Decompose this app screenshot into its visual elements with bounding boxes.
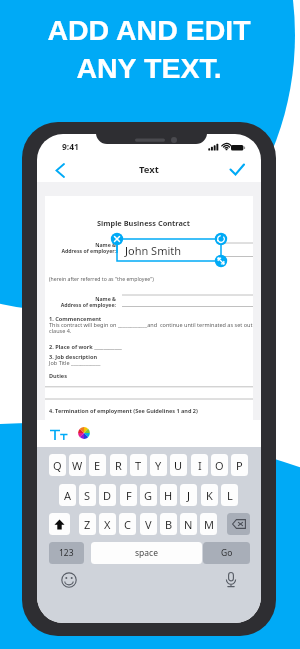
staticText: K [206, 488, 213, 503]
button[interactable]: Q [49, 454, 66, 476]
staticText: O [215, 458, 224, 473]
button[interactable]: Backspace [227, 513, 250, 535]
button[interactable]: Y [150, 454, 167, 476]
button[interactable]: F [120, 484, 137, 506]
staticText: B [165, 517, 173, 532]
staticText: D [103, 488, 112, 503]
button[interactable]: H [160, 484, 177, 506]
staticText: C [124, 517, 131, 532]
staticText: 2. Place of work ____________ [49, 343, 122, 351]
staticText: 123 [59, 547, 74, 559]
staticText: I [198, 458, 202, 473]
staticText: L [227, 488, 233, 503]
staticText: M [204, 517, 214, 532]
button[interactable]: A [59, 484, 76, 506]
button[interactable]: V [140, 513, 157, 535]
button[interactable]: U [170, 454, 187, 476]
staticText: Name & Address of employee: [54, 295, 116, 309]
button[interactable]: Z [79, 513, 96, 535]
staticText: 3. Job description [49, 353, 98, 361]
staticText: A [64, 488, 72, 503]
staticText: 1. Commencement [49, 315, 102, 323]
button[interactable]: O [211, 454, 228, 476]
staticText: E [94, 458, 101, 473]
button[interactable]: Voice input [222, 571, 240, 589]
staticText: This contract will begin on ____________… [49, 321, 253, 335]
button[interactable]: G [140, 484, 157, 506]
button[interactable]: Text size [49, 425, 69, 443]
staticText: Name & Address of employer: [54, 241, 116, 255]
button[interactable]: J [180, 484, 197, 506]
staticText: H [164, 488, 173, 503]
staticText: T [135, 458, 142, 473]
staticText: 4. Termination of employment (See Guidel… [49, 407, 198, 414]
button[interactable]: C [119, 513, 136, 535]
button[interactable]: S [79, 484, 96, 506]
button[interactable]: Text [132, 162, 166, 176]
staticText: N [184, 517, 193, 532]
button[interactable]: L [221, 484, 238, 506]
staticText: Simple Business Contract [97, 218, 190, 228]
button[interactable]: D [99, 484, 116, 506]
button[interactable]: Emoji keyboard [60, 571, 78, 589]
staticText: P [236, 458, 243, 473]
button[interactable]: Text colour [75, 424, 93, 442]
staticText: X [104, 517, 111, 532]
staticText: F [126, 488, 132, 503]
staticText: S [84, 488, 91, 503]
button[interactable]: Shift [49, 513, 70, 535]
staticText: U [174, 458, 183, 473]
button[interactable]: W [69, 454, 86, 476]
button[interactable]: Go [203, 542, 250, 564]
button[interactable]: E [89, 454, 106, 476]
staticText: Duties [49, 372, 67, 380]
button[interactable]: K [201, 484, 218, 506]
staticText: G [144, 488, 153, 503]
staticText: John Smith [125, 243, 182, 258]
staticText: Q [53, 458, 62, 473]
button[interactable]: 123 [49, 542, 84, 564]
staticText: Y [155, 458, 162, 473]
staticText: J [187, 488, 191, 503]
button[interactable]: space [91, 542, 202, 564]
button[interactable]: John Smith [117, 239, 221, 261]
button[interactable]: P [231, 454, 248, 476]
button[interactable]: I [191, 454, 208, 476]
button[interactable]: Done [227, 157, 251, 181]
staticText: Z [84, 517, 91, 532]
button[interactable]: M [200, 513, 217, 535]
button[interactable]: B [160, 513, 177, 535]
button[interactable]: T [130, 454, 147, 476]
button[interactable]: X [99, 513, 116, 535]
staticText: V [145, 517, 152, 532]
staticText: (herein after referred to as "the employ… [49, 275, 154, 282]
button[interactable]: N [180, 513, 197, 535]
staticText: W [72, 458, 83, 473]
button[interactable]: Back [48, 157, 72, 181]
staticText: 9:41 [62, 141, 79, 153]
staticText: Job Title ____________ [49, 359, 101, 366]
staticText: R [115, 458, 122, 473]
staticText: Go [221, 547, 233, 559]
staticText: ADD AND EDIT ANY TEXT. [0, 14, 299, 84]
staticText: Text [139, 163, 159, 176]
button[interactable]: R [110, 454, 127, 476]
staticText: space [135, 547, 158, 559]
